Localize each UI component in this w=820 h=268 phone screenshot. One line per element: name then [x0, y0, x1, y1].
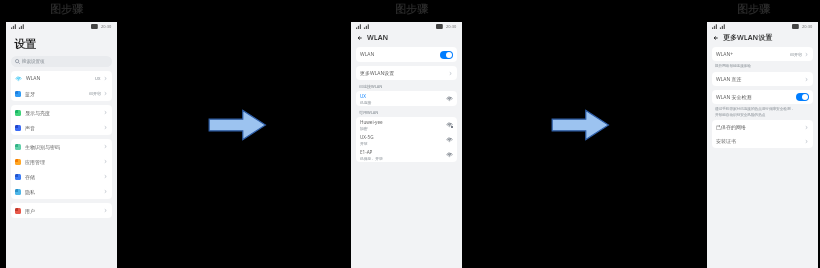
staticText: 图步骤	[737, 2, 770, 16]
button[interactable]: 搜索设置项	[11, 56, 112, 67]
staticText: 图步骤	[50, 2, 83, 16]
staticText: 更多WLAN设置	[360, 70, 395, 77]
button[interactable]: Toggle	[796, 93, 809, 101]
button[interactable]: Huwei-yee	[356, 117, 457, 132]
staticText: 用户	[25, 208, 35, 214]
staticText: 已连接	[360, 100, 372, 105]
staticText: Huwei-yee	[360, 119, 383, 125]
staticText: 已连接WLAN	[359, 84, 383, 89]
staticText: UX-5G	[360, 134, 374, 140]
button[interactable]: 用户	[11, 203, 112, 218]
staticText: 已开启	[790, 52, 802, 57]
button[interactable]: Toggle	[440, 51, 453, 59]
staticText: 开放	[360, 141, 368, 146]
button[interactable]: WLAN	[11, 71, 112, 86]
staticText: WLAN 安全检测	[716, 94, 752, 101]
staticText: 图步骤	[395, 2, 428, 16]
staticText: E1-AP	[360, 149, 373, 155]
staticText: 20:30	[802, 24, 813, 29]
staticText: WLAN	[360, 51, 375, 58]
button[interactable]: WLAN+	[712, 47, 813, 61]
button[interactable]: E1-AP	[356, 147, 457, 162]
staticText: 搜索设置项	[22, 59, 45, 65]
staticText: 可用WLAN	[359, 110, 379, 115]
button[interactable]: WLAN 安全检测	[712, 90, 813, 104]
staticText: 20:30	[446, 24, 457, 29]
button[interactable]: 显示与亮度	[11, 105, 112, 120]
button[interactable]: 生物识别与密码	[11, 139, 112, 154]
staticText: 已保存的网络	[716, 124, 746, 130]
staticText: UX	[95, 76, 101, 81]
staticText: 应用管理	[25, 159, 45, 165]
button[interactable]: 隐私	[11, 184, 112, 199]
staticText: 存储	[25, 174, 35, 180]
staticText: 通过手机管家对已连接的热点进行保障安全检测， 并智能自动识别安全风险的热点	[715, 107, 795, 117]
staticText: 20:30	[101, 24, 112, 29]
button[interactable]: Back	[712, 34, 720, 42]
button[interactable]: 存储	[11, 169, 112, 184]
staticText: 加密	[360, 126, 368, 131]
button[interactable]: 应用管理	[11, 154, 112, 169]
staticText: 生物识别与密码	[25, 144, 60, 150]
button[interactable]: 更多WLAN设置	[356, 66, 457, 80]
button[interactable]: 已保存的网络	[712, 120, 813, 134]
staticText: 声音	[25, 125, 35, 131]
staticText: 已保存、开放	[360, 156, 383, 161]
button[interactable]: UX	[356, 91, 457, 106]
staticText: 蓝牙	[25, 91, 35, 97]
button[interactable]: Back	[356, 34, 364, 42]
staticText: 安装证书	[716, 138, 736, 144]
staticText: WLAN	[367, 33, 389, 43]
staticText: 隐私	[25, 189, 35, 195]
button[interactable]: WLAN 直连	[712, 72, 813, 86]
staticText: WLAN+	[716, 51, 734, 58]
button[interactable]: 安装证书	[712, 134, 813, 148]
staticText: 设置	[14, 37, 36, 51]
staticText: WLAN	[26, 75, 41, 82]
button[interactable]: WLAN	[356, 47, 457, 62]
button[interactable]: 声音	[11, 120, 112, 135]
staticText: 显示与亮度	[25, 110, 50, 116]
button[interactable]: UX-5G	[356, 132, 457, 147]
staticText: 更多WLAN设置	[723, 33, 773, 43]
staticText: 已开启	[89, 91, 101, 96]
staticText: WLAN 直连	[716, 76, 742, 83]
staticText: UX	[360, 93, 367, 99]
button[interactable]: 蓝牙	[11, 86, 112, 101]
staticText: 提升网络智能连接体验	[715, 64, 751, 69]
